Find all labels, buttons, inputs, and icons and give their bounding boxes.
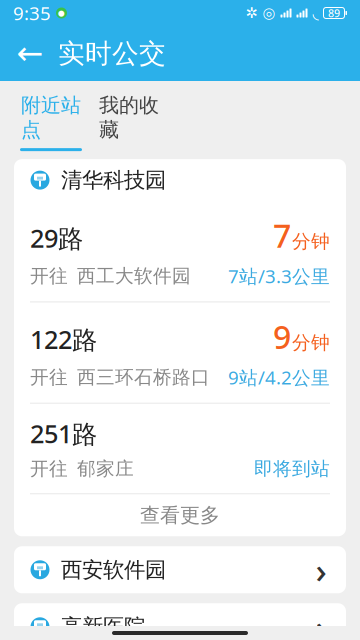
button[interactable]: 附近站点 [12, 93, 90, 151]
staticText: 分钟 [292, 230, 330, 253]
staticText: 附近站点 [21, 93, 81, 142]
button[interactable]: 查看更多 [14, 494, 346, 536]
staticText: 西安软件园 [61, 557, 166, 583]
staticText: 开往 [30, 265, 68, 287]
staticText: 西工大软件园 [77, 265, 191, 287]
staticText: 分钟 [292, 331, 330, 354]
staticText: ◎ [262, 5, 275, 21]
button[interactable]: 122路 [14, 302, 346, 404]
staticText: 122路 [30, 322, 97, 356]
staticText: 查看更多 [140, 503, 220, 528]
staticText: 我的收藏 [99, 93, 159, 142]
staticText: › [315, 604, 326, 640]
staticText: 即将到站 [254, 457, 330, 480]
staticText: › [315, 547, 326, 593]
staticText: ✲ [245, 5, 257, 21]
staticText: ← [16, 35, 43, 72]
button[interactable]: 251路 [14, 404, 346, 494]
staticText: 实时公交 [58, 37, 166, 70]
button[interactable]: 我的收藏 [90, 93, 168, 151]
staticText: 西三环石桥路口 [77, 366, 210, 389]
staticText: 9 [273, 315, 291, 358]
staticText: 开往 [30, 457, 68, 480]
staticText: 89 [328, 6, 340, 20]
button[interactable]: 西安软件园 [14, 546, 346, 593]
staticText: 251路 [30, 417, 97, 450]
staticText: 清华科技园 [61, 167, 166, 193]
staticText: 郁家庄 [77, 457, 134, 480]
button[interactable]: 高新医院 [14, 603, 346, 640]
staticText: ◟ [312, 4, 318, 22]
button[interactable]: Back [8, 29, 52, 77]
staticText: ● [58, 8, 65, 18]
staticText: 29路 [30, 221, 83, 255]
staticText: 高新医院 [61, 614, 145, 640]
staticText: 9站/4.2公里 [228, 365, 330, 390]
staticText: 7 [273, 214, 291, 257]
staticText: 9:35 [13, 1, 51, 25]
staticText: 7站/3.3公里 [228, 264, 330, 288]
staticText: 开往 [30, 366, 68, 389]
button[interactable]: 29路 [14, 201, 346, 302]
